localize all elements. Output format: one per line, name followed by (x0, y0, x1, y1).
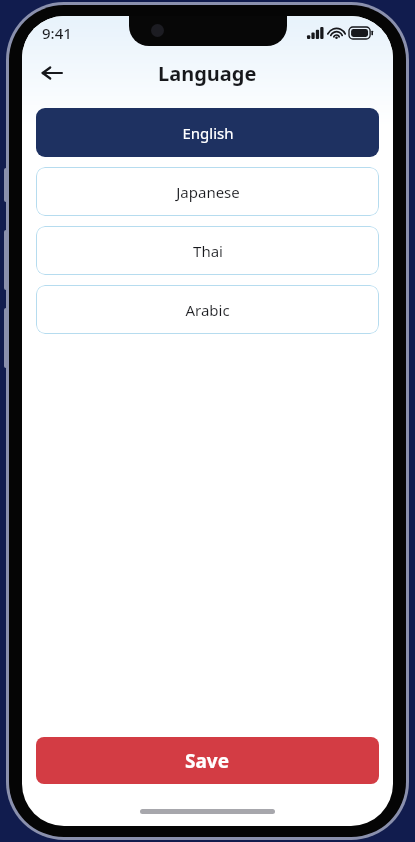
button[interactable]: Arabic (36, 285, 379, 334)
staticText: Arabic (185, 300, 230, 320)
staticText: 9:41 (42, 23, 72, 43)
button[interactable]: Back (32, 53, 72, 93)
staticText: Save (185, 748, 230, 774)
button[interactable]: Save (36, 737, 379, 784)
button[interactable]: Japanese (36, 167, 379, 216)
button[interactable]: Thai (36, 226, 379, 275)
button[interactable]: English (36, 108, 379, 157)
staticText: English (182, 123, 234, 143)
staticText: Japanese (176, 182, 240, 202)
staticText: Language (158, 60, 257, 87)
staticText: Thai (193, 241, 223, 261)
